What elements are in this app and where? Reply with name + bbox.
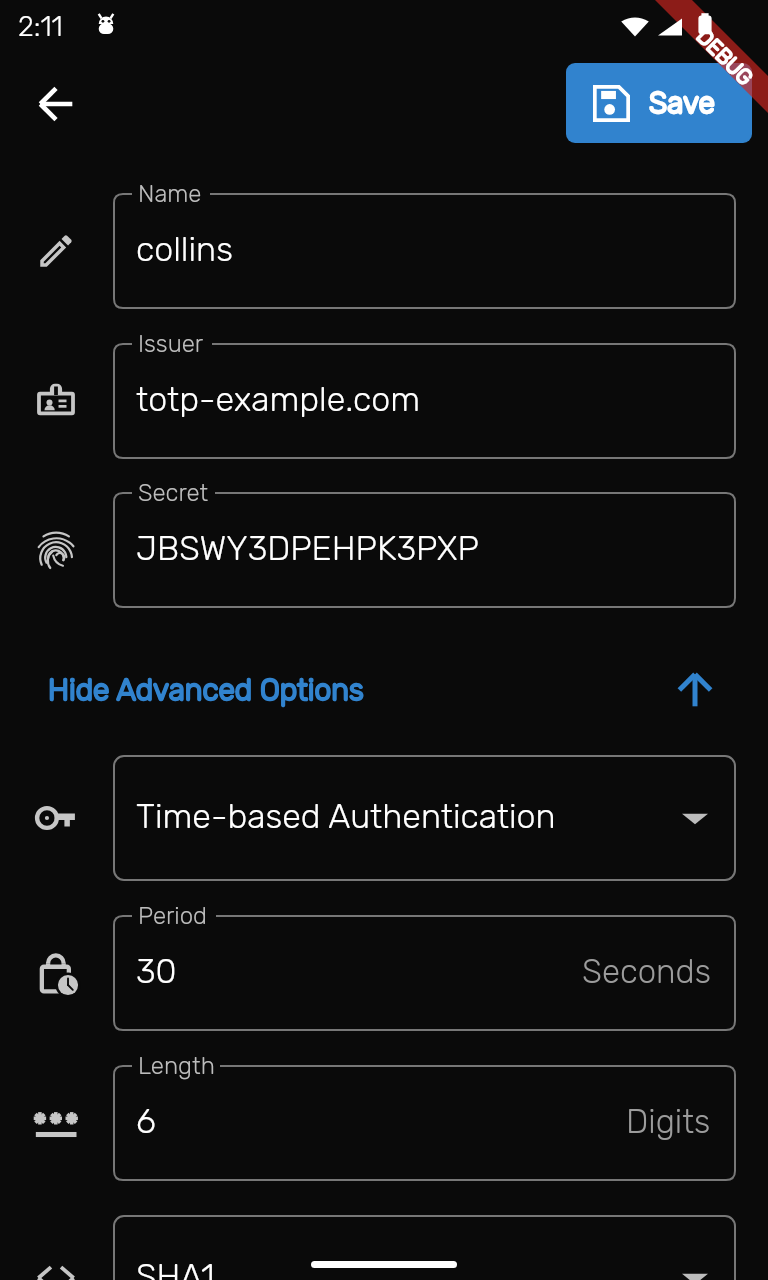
button[interactable]: 30 (113, 915, 736, 1031)
staticText: DEBUG (692, 23, 758, 90)
staticText: SHA1 (136, 1256, 215, 1280)
staticText: JBSWY3DPEHPK3PXP (136, 528, 479, 568)
staticText: Seconds (582, 952, 711, 991)
staticText: 2:11 (18, 10, 63, 43)
staticText: Issuer (138, 330, 204, 358)
staticText: Secret (138, 479, 209, 507)
staticText: Length (138, 1052, 215, 1080)
staticText: 30 (136, 951, 177, 991)
staticText: Save (649, 85, 715, 121)
staticText: Hide Advanced Options (48, 672, 364, 708)
button[interactable]: totp-example.com (113, 343, 736, 459)
button[interactable]: JBSWY3DPEHPK3PXP (113, 492, 736, 608)
staticText: 6 (136, 1101, 156, 1141)
button[interactable]: Time-based Authentication (113, 755, 736, 881)
staticText: Hide Advanced Options (48, 672, 364, 708)
button[interactable]: SHA1 (113, 1215, 736, 1280)
staticText: Digits (626, 1102, 711, 1141)
staticText: Period (138, 902, 208, 930)
staticText: DEBUG (692, 23, 758, 90)
staticText: Save (649, 85, 715, 121)
staticText: Time-based Authentication (136, 796, 556, 836)
staticText: collins (136, 229, 233, 269)
button[interactable]: Back (20, 68, 92, 140)
button[interactable]: Save (566, 63, 752, 143)
button[interactable]: Hide Advanced Options (30, 660, 738, 720)
button[interactable]: 6 (113, 1065, 736, 1181)
staticText: Name (138, 180, 202, 208)
button[interactable]: collins (113, 193, 736, 309)
staticText: totp-example.com (136, 379, 421, 419)
